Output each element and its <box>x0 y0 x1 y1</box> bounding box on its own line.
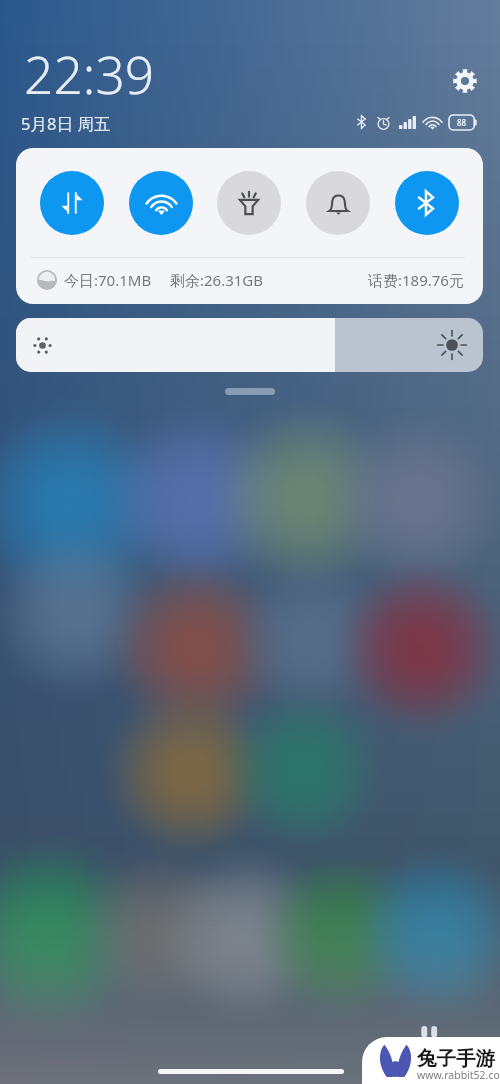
staticText: 22:39 <box>24 39 155 109</box>
button[interactable]: Wi-Fi <box>129 171 193 235</box>
staticText: 话费:189.76元 <box>368 270 464 290</box>
button[interactable]: Flashlight <box>217 171 281 235</box>
staticText: 88 <box>457 117 467 128</box>
button[interactable]: Bluetooth <box>395 171 459 235</box>
staticText: 剩余:26.31GB <box>170 270 264 290</box>
button[interactable]: Settings <box>450 66 480 96</box>
staticText: 兔子手游 <box>417 1046 495 1071</box>
staticText: www.rabbit52.com <box>417 1068 500 1082</box>
button[interactable]: Ringer <box>306 171 370 235</box>
button[interactable]: Brightness <box>16 318 483 372</box>
button[interactable]: Mobile data <box>40 171 104 235</box>
staticText: 5月8日 周五 <box>21 112 111 135</box>
staticText: 今日:70.1MB <box>64 270 152 290</box>
